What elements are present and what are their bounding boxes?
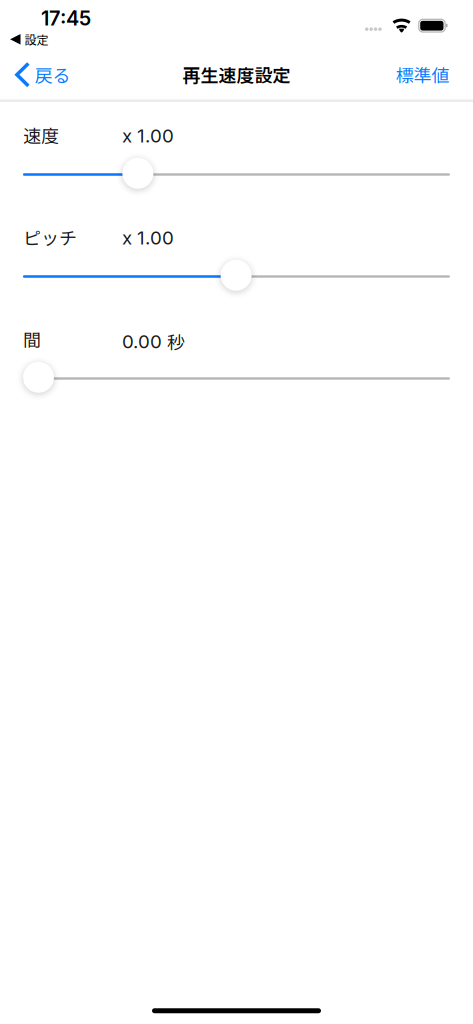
staticText: 戻る bbox=[34, 61, 70, 88]
staticText: x 1.00 bbox=[122, 124, 174, 147]
staticText: 速度 bbox=[23, 122, 59, 148]
staticText: 標準値 bbox=[395, 61, 449, 88]
staticText: 間 bbox=[23, 326, 41, 352]
staticText: 秒 bbox=[167, 328, 185, 354]
button[interactable]: 標準値 bbox=[385, 50, 473, 99]
button[interactable]: 戻る bbox=[0, 50, 80, 99]
staticText: 17:45 bbox=[41, 6, 91, 30]
staticText: 設定 bbox=[24, 31, 48, 48]
staticText: ピッチ bbox=[23, 224, 77, 250]
staticText: 再生速度設定 bbox=[182, 61, 290, 88]
staticText: 0.00 bbox=[122, 330, 162, 353]
staticText: x 1.00 bbox=[122, 226, 174, 249]
